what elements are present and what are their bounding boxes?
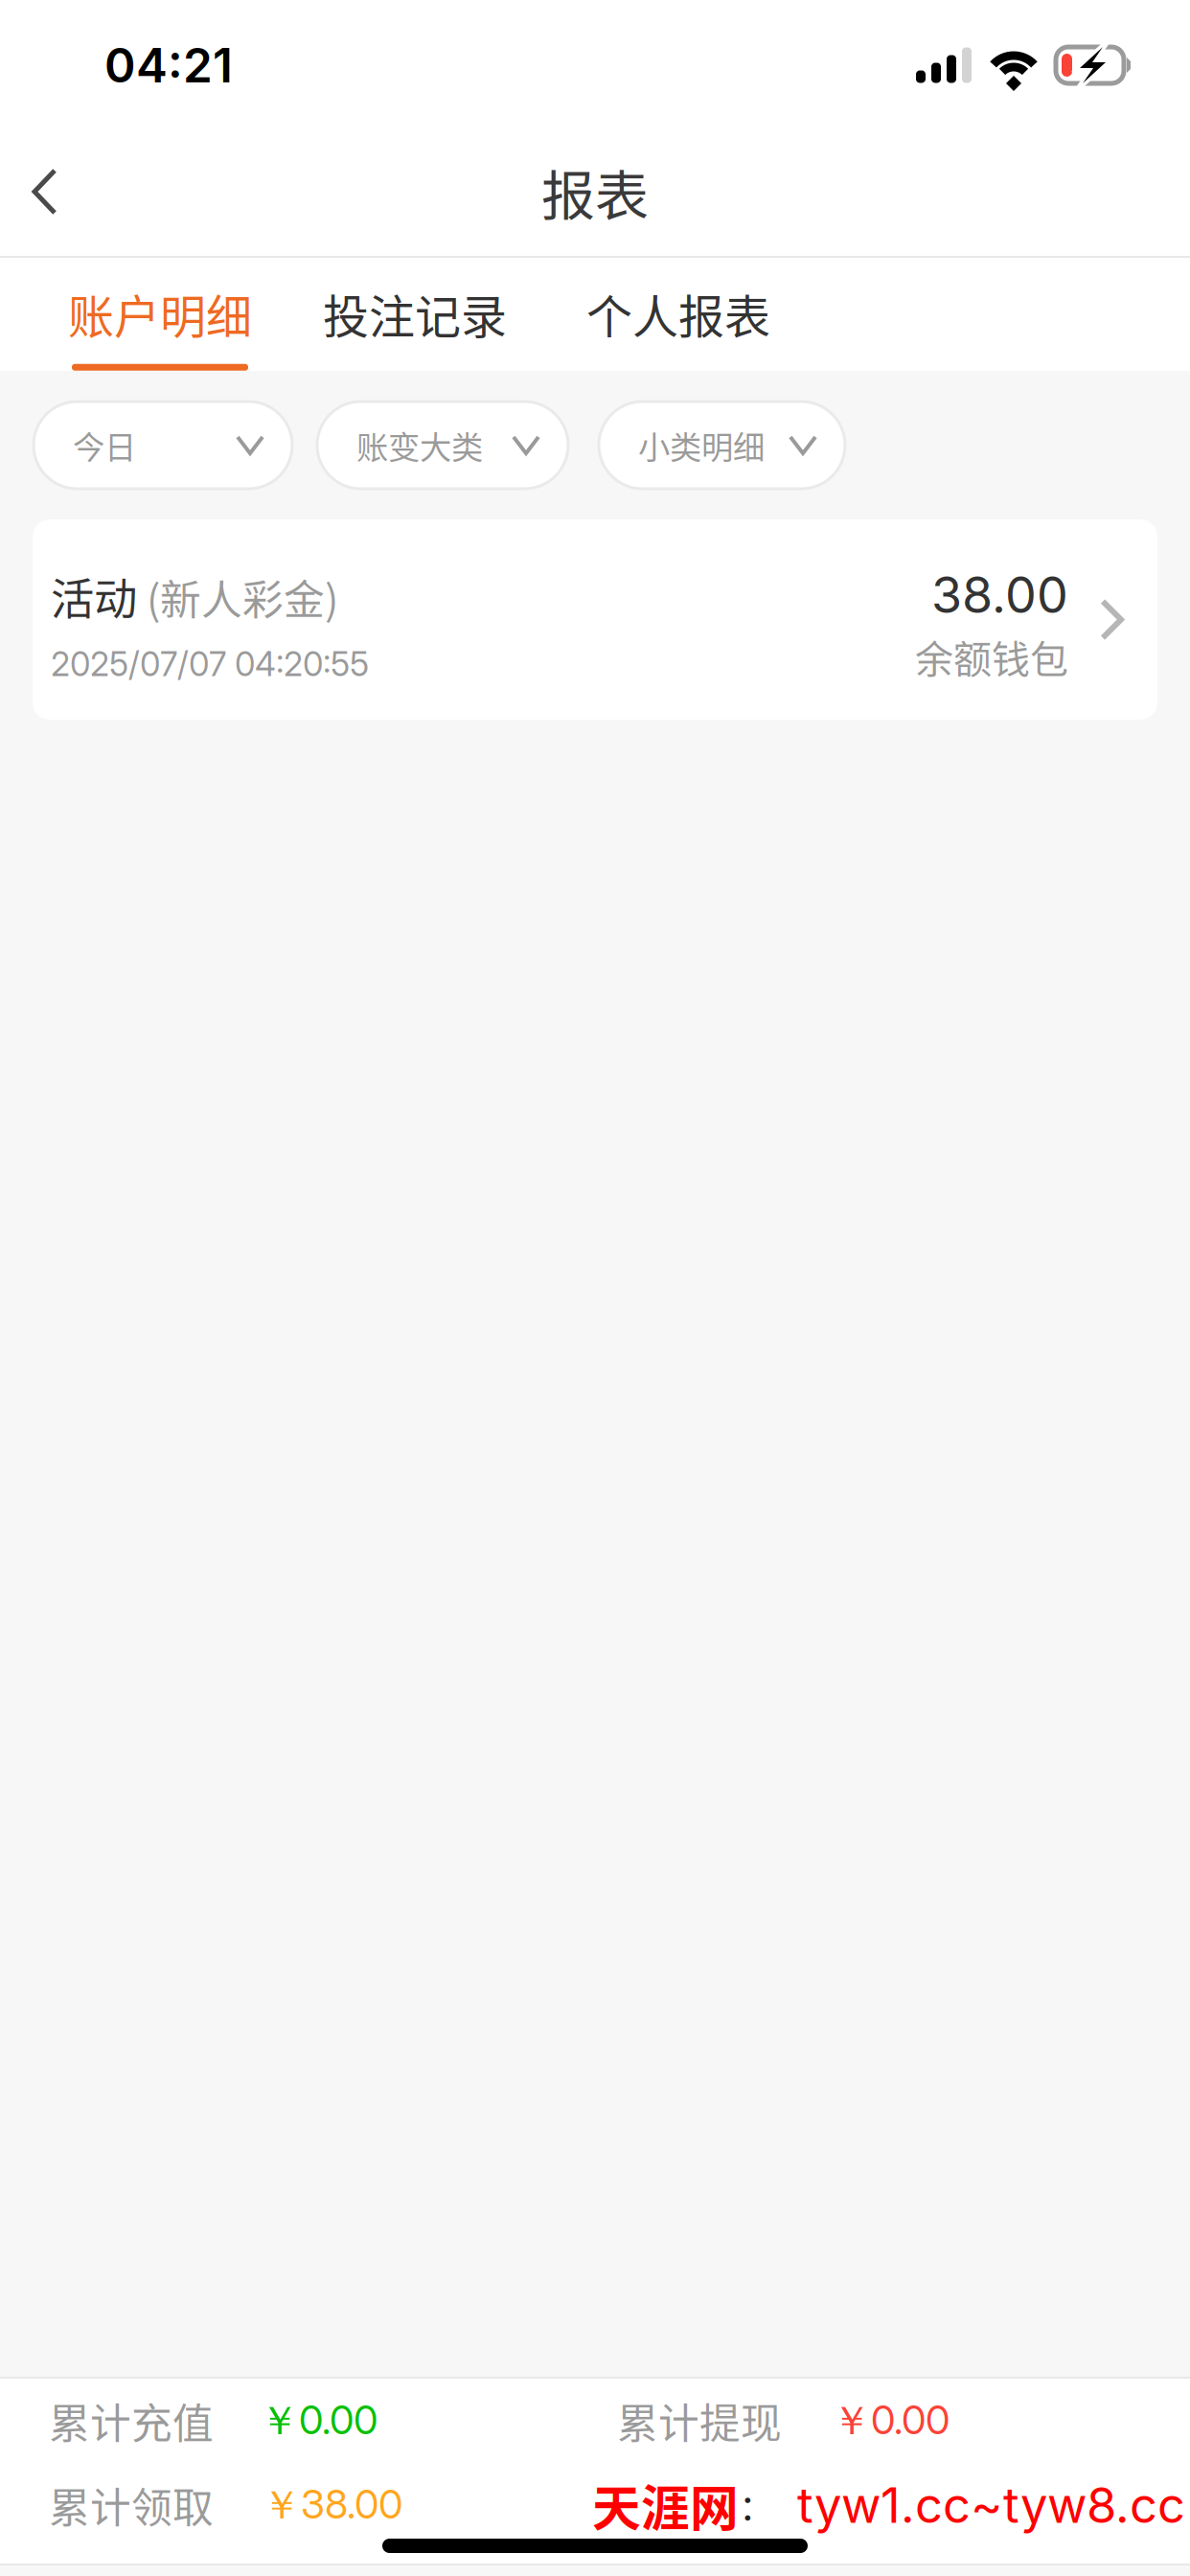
staticText: 余额钱包 bbox=[915, 629, 1068, 684]
button[interactable]: 账变大类 bbox=[317, 402, 568, 489]
button[interactable]: 小类明细 bbox=[599, 402, 845, 489]
staticText: 累计提现 bbox=[617, 2391, 782, 2450]
staticText: 累计充值 bbox=[49, 2391, 214, 2450]
staticText: 投注记录 bbox=[323, 280, 507, 347]
staticText: 个人报表 bbox=[586, 280, 770, 347]
staticText: ￥0.00 bbox=[832, 2396, 950, 2446]
staticText: ￥0.00 bbox=[260, 2396, 378, 2446]
staticText: 累计领取 bbox=[49, 2475, 214, 2535]
staticText: 账变大类 bbox=[356, 422, 483, 468]
staticText: 今日 bbox=[73, 422, 136, 468]
staticText: tyw1.cc~tyw8.cc bbox=[797, 2476, 1185, 2534]
button[interactable]: 活动 bbox=[33, 519, 1157, 720]
button[interactable]: 今日 bbox=[34, 402, 292, 489]
staticText: 38.00 bbox=[931, 565, 1068, 625]
staticText: ￥38.00 bbox=[262, 2480, 402, 2530]
staticText: ： bbox=[739, 2479, 774, 2531]
button[interactable]: 个人报表 bbox=[586, 258, 770, 371]
staticText: 2025/07/07 04:20:55 bbox=[51, 644, 369, 684]
staticText: (新人彩金) bbox=[137, 568, 338, 627]
staticText: 账户明细 bbox=[68, 280, 252, 347]
button[interactable]: 账户明细 bbox=[68, 258, 252, 371]
staticText: 活动 bbox=[51, 565, 137, 628]
staticText: 04:21 bbox=[104, 37, 233, 94]
staticText: 报表 bbox=[541, 153, 649, 231]
staticText: 天涯网 bbox=[592, 2470, 739, 2540]
button[interactable]: Back bbox=[0, 131, 100, 252]
staticText: 小类明细 bbox=[638, 422, 765, 468]
button[interactable]: 投注记录 bbox=[323, 258, 507, 371]
